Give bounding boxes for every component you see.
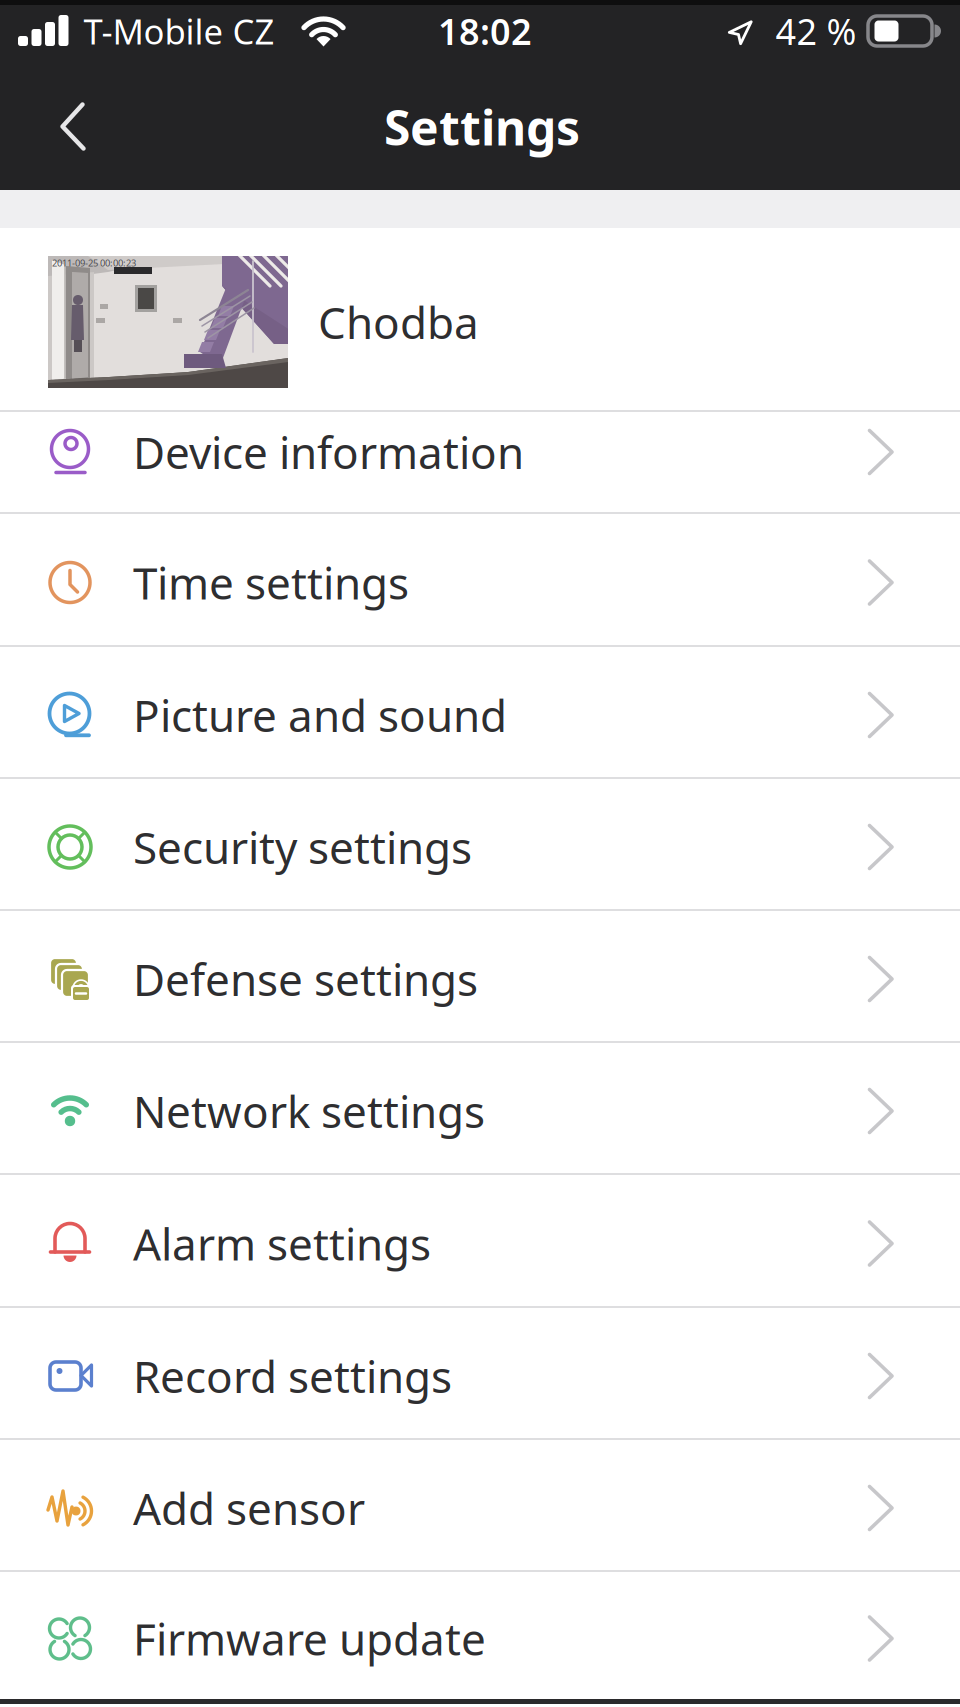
button[interactable]: Back bbox=[0, 0, 87, 151]
button[interactable]: Add sensor bbox=[0, 1440, 960, 1570]
staticText: Time settings bbox=[133, 553, 409, 612]
staticText: 2011-09-25 00:00:23 bbox=[52, 257, 136, 269]
button[interactable]: Defense settings bbox=[0, 911, 960, 1041]
staticText: 42 % bbox=[775, 7, 856, 55]
button[interactable]: Firmware update bbox=[0, 1572, 960, 1699]
button[interactable]: Network settings bbox=[0, 1043, 960, 1173]
button[interactable]: Picture and sound bbox=[0, 647, 960, 777]
button[interactable]: Record settings bbox=[0, 1308, 960, 1438]
staticText: Record settings bbox=[133, 1347, 452, 1405]
staticText: Chodba bbox=[318, 293, 479, 351]
staticText: 18:02 bbox=[438, 7, 532, 55]
button[interactable]: 2011-09-25 00:00:23 bbox=[0, 228, 960, 410]
staticText: Alarm settings bbox=[133, 1214, 431, 1273]
staticText: T-Mobile CZ bbox=[83, 8, 274, 54]
button[interactable]: Time settings bbox=[0, 514, 960, 645]
staticText: Security settings bbox=[133, 818, 472, 876]
staticText: Add sensor bbox=[133, 1479, 365, 1537]
staticText: Firmware update bbox=[133, 1609, 486, 1668]
button[interactable]: Device information bbox=[0, 412, 960, 512]
staticText: Picture and sound bbox=[133, 686, 507, 744]
staticText: Settings bbox=[384, 95, 580, 159]
button[interactable]: Alarm settings bbox=[0, 1175, 960, 1306]
staticText: Device information bbox=[133, 423, 524, 481]
button[interactable]: Security settings bbox=[0, 779, 960, 909]
staticText: Defense settings bbox=[133, 950, 478, 1008]
staticText: Network settings bbox=[133, 1082, 485, 1140]
